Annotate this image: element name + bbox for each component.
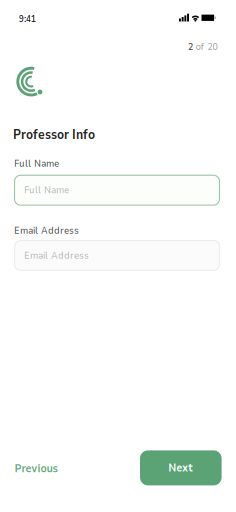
button[interactable]: Next bbox=[140, 450, 222, 485]
staticText: Next bbox=[168, 460, 193, 476]
staticText: Email Address bbox=[24, 249, 89, 262]
button[interactable]: Email Address text field bbox=[14, 240, 220, 271]
staticText: Previous bbox=[15, 461, 58, 476]
button[interactable]: Previous bbox=[14, 458, 59, 479]
staticText: Full Name bbox=[14, 157, 59, 170]
staticText: 2 bbox=[188, 40, 193, 53]
staticText: Professor Info bbox=[13, 126, 95, 144]
staticText: 9:41 bbox=[19, 13, 36, 25]
staticText: Full Name bbox=[24, 184, 69, 197]
staticText: Email Address bbox=[14, 224, 79, 237]
staticText: of 20 bbox=[195, 40, 217, 53]
button[interactable]: Full Name text field bbox=[14, 175, 220, 206]
